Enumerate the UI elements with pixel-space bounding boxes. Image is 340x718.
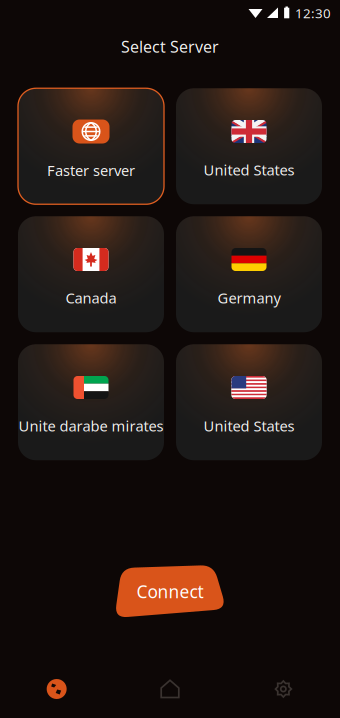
staticText: Select Server (121, 36, 219, 57)
button[interactable]: Unite darabe mirates (18, 344, 164, 460)
button[interactable]: Canada (18, 216, 164, 332)
staticText: Unite darabe mirates (18, 416, 163, 435)
button[interactable]: United States (176, 344, 322, 460)
staticText: 12:30 (295, 4, 331, 22)
button[interactable]: Settings (227, 679, 340, 699)
button[interactable]: Servers (0, 679, 113, 699)
button[interactable]: Connect (113, 565, 226, 618)
button[interactable]: United States (176, 88, 322, 204)
staticText: United States (203, 160, 294, 179)
button[interactable]: Germany (176, 216, 322, 332)
button[interactable]: Faster server (18, 88, 164, 204)
staticText: United States (203, 416, 294, 435)
staticText: Connect (136, 580, 203, 603)
staticText: Faster server (47, 160, 135, 180)
staticText: Canada (65, 288, 116, 307)
staticText: Germany (217, 288, 280, 307)
button[interactable]: Home (113, 679, 227, 699)
